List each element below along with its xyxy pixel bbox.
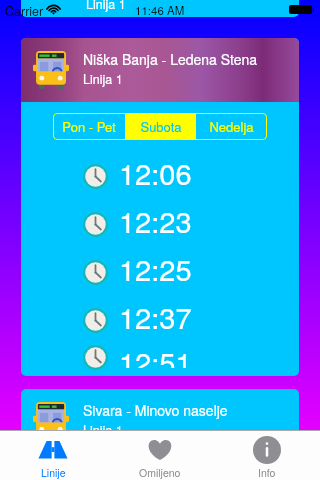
staticText: 12:25 (119, 248, 192, 290)
staticText: Linija 1 (83, 70, 123, 88)
staticText: 12:51 (119, 341, 192, 368)
staticText: Omiljeno (139, 465, 181, 480)
button[interactable]: Subota (125, 113, 196, 140)
other: Omiljeno (145, 436, 175, 464)
other: Linije (38, 436, 68, 464)
staticText: 12:37 (119, 296, 192, 338)
staticText: Linija 1 (83, 421, 123, 439)
button[interactable]: 12:25 (21, 248, 299, 296)
staticText: Pon - Pet (62, 117, 116, 136)
button[interactable]: Info (213, 431, 320, 480)
staticText: Subota (140, 117, 182, 136)
staticText: Niška Banja - Ledena Stena (83, 49, 258, 69)
button[interactable]: Sivara - Minovo naselje (21, 389, 299, 453)
other: Info (252, 436, 282, 464)
button[interactable]: Pon - Pet (53, 113, 125, 140)
staticText: 11:46 AM (135, 2, 185, 18)
button[interactable]: 12:37 (21, 296, 299, 344)
button[interactable]: 12:51 (21, 344, 299, 371)
staticText: Linija 1 (86, 0, 126, 12)
staticText: Nedelja (209, 117, 254, 136)
staticText: Sivara - Minovo naselje (83, 400, 228, 420)
button[interactable]: Linija 1 (21, 0, 299, 17)
button[interactable]: Niška Banja - Ledena Stena (21, 38, 299, 102)
staticText: Carrier (5, 2, 44, 20)
staticText: Info (258, 465, 276, 480)
button[interactable]: Omiljeno (106, 431, 213, 480)
staticText: 12:06 (119, 152, 192, 194)
staticText: Linije (41, 465, 66, 480)
button[interactable]: Nedelja (196, 113, 267, 140)
button[interactable]: Linije (0, 431, 106, 480)
button[interactable]: 12:23 (21, 200, 299, 248)
button[interactable]: 12:06 (21, 152, 299, 200)
staticText: 12:23 (119, 200, 192, 242)
